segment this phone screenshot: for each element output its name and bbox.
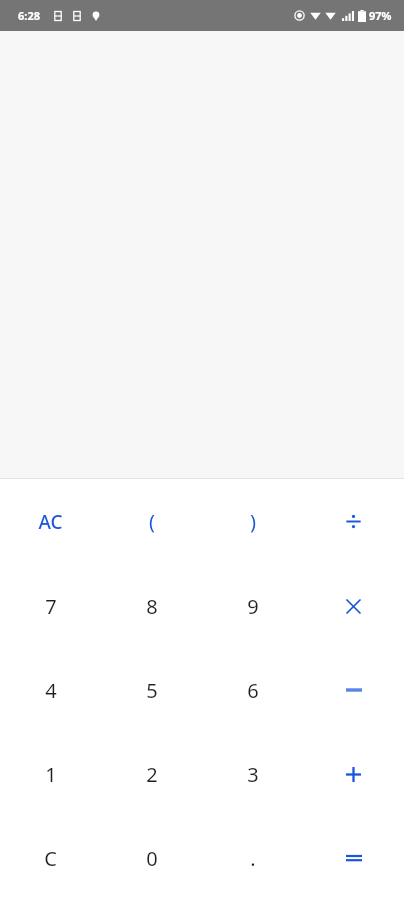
button[interactable]: 9 bbox=[202, 564, 303, 648]
staticText: ( bbox=[149, 508, 155, 535]
staticText: 6 bbox=[247, 677, 259, 704]
button[interactable]: 0 bbox=[101, 816, 202, 900]
button[interactable]: ) bbox=[202, 479, 303, 564]
button[interactable]: Add bbox=[303, 732, 404, 816]
button[interactable]: 6 bbox=[202, 648, 303, 732]
button[interactable]: . bbox=[202, 816, 303, 900]
staticText: 8 bbox=[146, 593, 158, 620]
staticText: ) bbox=[250, 508, 256, 535]
button[interactable]: 1 bbox=[0, 732, 101, 816]
button[interactable]: AC bbox=[0, 479, 101, 564]
button[interactable]: 2 bbox=[101, 732, 202, 816]
staticText: 97% bbox=[369, 8, 392, 23]
button[interactable]: Subtract bbox=[303, 648, 404, 732]
button[interactable]: ( bbox=[101, 479, 202, 564]
button[interactable]: 3 bbox=[202, 732, 303, 816]
button[interactable]: Equals bbox=[303, 816, 404, 900]
staticText: 7 bbox=[45, 593, 57, 620]
staticText: AC bbox=[38, 509, 63, 535]
staticText: . bbox=[250, 845, 256, 872]
staticText: 2 bbox=[146, 761, 158, 788]
staticText: 9 bbox=[247, 593, 259, 620]
button[interactable]: 5 bbox=[101, 648, 202, 732]
button[interactable]: C bbox=[0, 816, 101, 900]
staticText: C bbox=[44, 845, 57, 872]
staticText: 3 bbox=[247, 761, 259, 788]
button[interactable]: Divide bbox=[303, 479, 404, 564]
button[interactable]: 7 bbox=[0, 564, 101, 648]
button[interactable]: 4 bbox=[0, 648, 101, 732]
staticText: 6:28 bbox=[18, 8, 40, 23]
button[interactable]: 8 bbox=[101, 564, 202, 648]
staticText: 0 bbox=[146, 845, 158, 872]
staticText: 4 bbox=[45, 677, 57, 704]
button[interactable]: Multiply bbox=[303, 564, 404, 648]
staticText: 1 bbox=[45, 761, 57, 788]
staticText: 5 bbox=[146, 677, 158, 704]
